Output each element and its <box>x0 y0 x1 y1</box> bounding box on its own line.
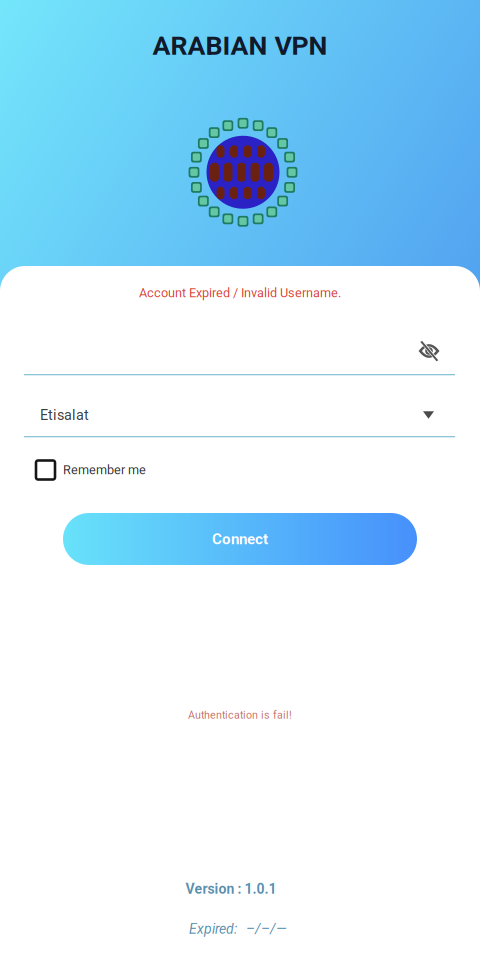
button[interactable]: Remember me <box>36 457 236 483</box>
staticText: Authentication is fail! <box>188 709 292 721</box>
button[interactable]: Hide password <box>411 336 447 366</box>
staticText: Remember me <box>63 463 146 477</box>
staticText: Expired: –/–/— <box>189 921 287 937</box>
staticText: Etisalat <box>40 407 89 423</box>
staticText: Account Expired / Invalid Username. <box>139 286 341 300</box>
button[interactable]: Etisalat <box>24 399 455 431</box>
staticText: ARABIAN VPN <box>152 30 327 61</box>
button[interactable]: Connect <box>63 513 417 565</box>
staticText: Connect <box>212 530 268 548</box>
staticText: Version : 1.0.1 <box>185 881 276 897</box>
